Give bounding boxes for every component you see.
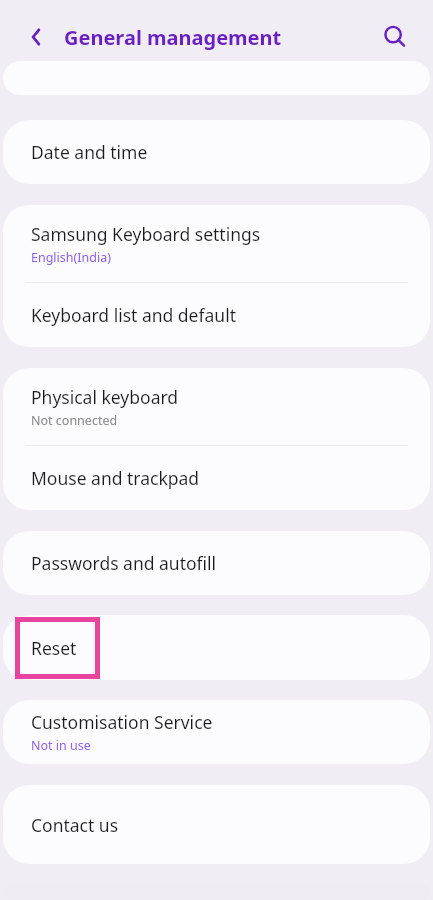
button[interactable]: Passwords and autofill: [3, 531, 430, 595]
staticText: Physical keyboard: [31, 385, 179, 409]
button[interactable]: Customisation Service: [3, 700, 430, 764]
button[interactable]: Search: [373, 15, 417, 59]
button[interactable]: Physical keyboard: [3, 368, 430, 445]
staticText: Mouse and trackpad: [31, 466, 200, 490]
staticText: Reset: [31, 636, 77, 660]
button[interactable]: Back: [14, 15, 58, 59]
staticText: Contact us: [31, 813, 119, 837]
staticText: Not in use: [31, 737, 91, 754]
staticText: Passwords and autofill: [31, 551, 217, 575]
staticText: Customisation Service: [31, 710, 213, 734]
staticText: General management: [64, 24, 373, 51]
button[interactable]: Mouse and trackpad: [3, 446, 430, 510]
staticText: Keyboard list and default: [31, 303, 236, 327]
button[interactable]: Date and time: [3, 120, 430, 184]
staticText: English(India): [31, 249, 111, 266]
staticText: Samsung Keyboard settings: [31, 222, 261, 246]
staticText: Date and time: [31, 140, 148, 164]
button[interactable]: Reset: [3, 615, 430, 680]
staticText: Not connected: [31, 412, 118, 429]
button[interactable]: Samsung Keyboard settings: [3, 205, 430, 282]
button[interactable]: Contact us: [3, 785, 430, 864]
button[interactable]: Keyboard list and default: [3, 283, 430, 347]
